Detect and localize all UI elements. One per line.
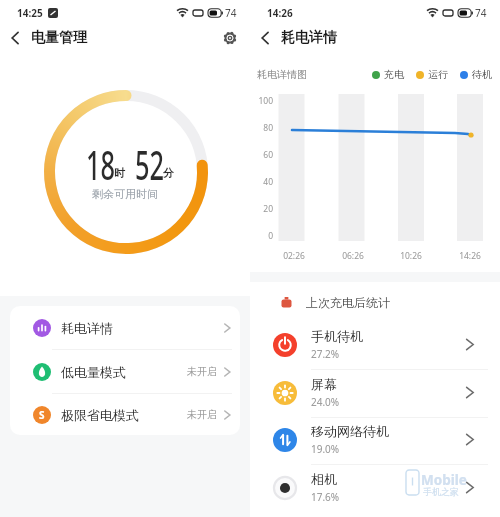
staticText: 手机待机: [311, 328, 363, 344]
staticText: 移动网络待机: [311, 423, 389, 439]
staticText: Mobile: [421, 471, 467, 489]
staticText: 19.0%: [311, 442, 340, 456]
staticText: S: [39, 408, 45, 422]
staticText: 24.0%: [311, 395, 340, 409]
staticText: 上次充电后统计: [306, 295, 390, 310]
staticText: 17.6%: [311, 490, 340, 504]
button[interactable]: [223, 31, 237, 45]
staticText: 耗电详情: [61, 320, 113, 336]
button[interactable]: 低电量模式: [10, 350, 240, 393]
staticText: 74: [225, 6, 237, 20]
staticText: 10:26: [396, 250, 426, 262]
staticText: 18: [86, 138, 115, 191]
button[interactable]: [8, 31, 22, 45]
button[interactable]: S: [10, 394, 240, 435]
staticText: 20: [250, 203, 273, 215]
staticText: 02:26: [279, 250, 309, 262]
staticText: 时: [114, 166, 125, 180]
staticText: 0: [250, 230, 273, 242]
staticText: 06:26: [338, 250, 368, 262]
staticText: 100: [250, 95, 273, 107]
button[interactable]: 手机待机: [250, 321, 500, 368]
staticText: 手机之家: [423, 486, 459, 497]
staticText: 27.2%: [311, 347, 340, 361]
staticText: 电量管理: [31, 29, 87, 47]
staticText: 耗电详情图: [257, 68, 307, 81]
staticText: 极限省电模式: [61, 407, 139, 423]
staticText: 14:25: [17, 6, 43, 20]
staticText: 14:26: [267, 6, 293, 20]
staticText: 相机: [311, 471, 337, 487]
staticText: 分: [163, 166, 174, 180]
button[interactable]: 耗电详情: [10, 306, 240, 349]
staticText: 待机: [472, 68, 492, 81]
staticText: 剩余可用时间: [0, 187, 250, 201]
button[interactable]: 移动网络待机: [250, 416, 500, 463]
staticText: 未开启: [187, 365, 217, 378]
button[interactable]: 屏幕: [250, 369, 500, 416]
staticText: 74: [475, 6, 487, 20]
button[interactable]: 相机: [250, 464, 500, 511]
staticText: 耗电详情: [281, 29, 337, 47]
staticText: 52: [135, 138, 164, 191]
staticText: 充电: [384, 68, 404, 81]
staticText: 60: [250, 149, 273, 161]
staticText: 运行: [428, 68, 448, 81]
button[interactable]: [258, 31, 272, 45]
staticText: 屏幕: [311, 376, 337, 392]
staticText: 未开启: [187, 408, 217, 421]
staticText: 80: [250, 122, 273, 134]
staticText: 低电量模式: [61, 364, 126, 380]
staticText: 14:26: [455, 250, 485, 262]
staticText: 40: [250, 176, 273, 188]
